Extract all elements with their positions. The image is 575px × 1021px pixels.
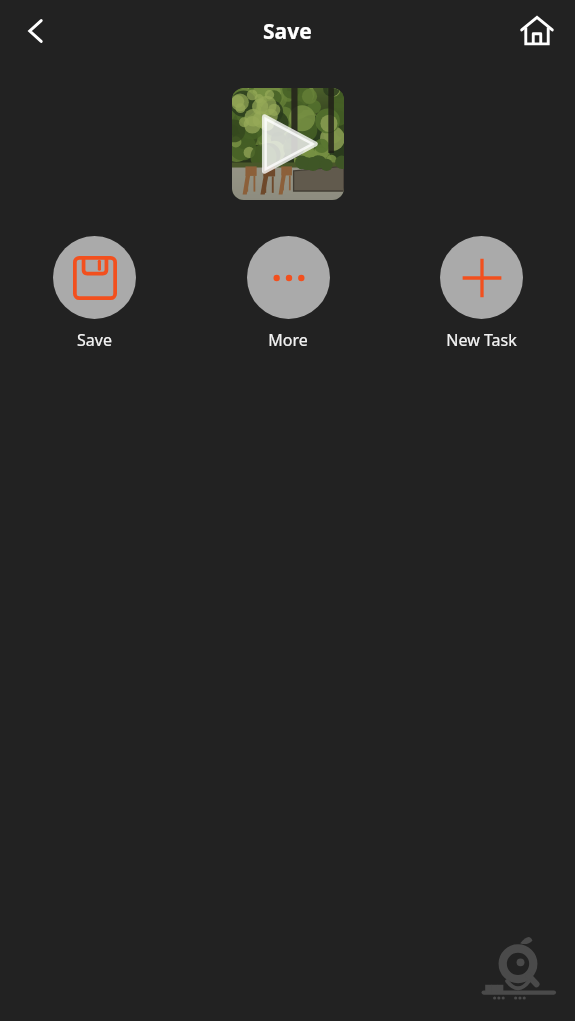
staticText: New Task: [446, 329, 517, 351]
staticText: Save: [77, 329, 112, 351]
button[interactable]: Play video: [232, 88, 344, 200]
staticText: More: [268, 329, 308, 351]
button[interactable]: Home: [509, 3, 565, 59]
staticText: Save: [263, 17, 312, 46]
button[interactable]: More: [240, 236, 336, 351]
button[interactable]: New Task: [433, 236, 529, 351]
button[interactable]: Back: [8, 3, 64, 59]
button[interactable]: Save: [46, 236, 142, 351]
